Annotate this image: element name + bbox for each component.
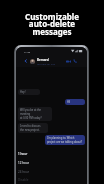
button[interactable]: 24 hour [18, 167, 85, 176]
button[interactable]: Hey! [18, 89, 40, 95]
staticText: 1 hour [18, 152, 28, 156]
staticText: Disable [18, 178, 29, 182]
button[interactable]: I need to discuss the new project. [18, 123, 48, 133]
button[interactable]: Back [23, 58, 29, 64]
button[interactable]: I'm planning to. Which project are we ta… [45, 135, 85, 145]
staticText: I'm planning to. Which project are we ta… [47, 136, 83, 144]
staticText: 11:43 [24, 50, 31, 53]
staticText: 24 hour [18, 170, 29, 174]
button[interactable]: Video call [65, 58, 71, 64]
staticText: 12 hour [18, 161, 29, 165]
button[interactable]: Call [72, 58, 78, 64]
staticText: Will you be at the meeting at 3:00 PM to… [20, 108, 50, 120]
button[interactable]: Will you be at the meeting at 3:00 PM to… [18, 107, 52, 121]
button[interactable]: Disable [18, 176, 85, 184]
staticText: I need to discuss the new project. [20, 124, 41, 132]
staticText: Hi! [67, 100, 71, 104]
button[interactable]: 1 hour [18, 149, 85, 158]
button[interactable]: Hi! [65, 99, 85, 105]
staticText: tap here for info [37, 62, 56, 65]
staticText: Bernard [37, 58, 49, 62]
staticText: Hey! [20, 90, 26, 94]
staticText: Customizable auto-delete messages [25, 11, 79, 37]
button[interactable]: 12 hour [18, 158, 85, 167]
